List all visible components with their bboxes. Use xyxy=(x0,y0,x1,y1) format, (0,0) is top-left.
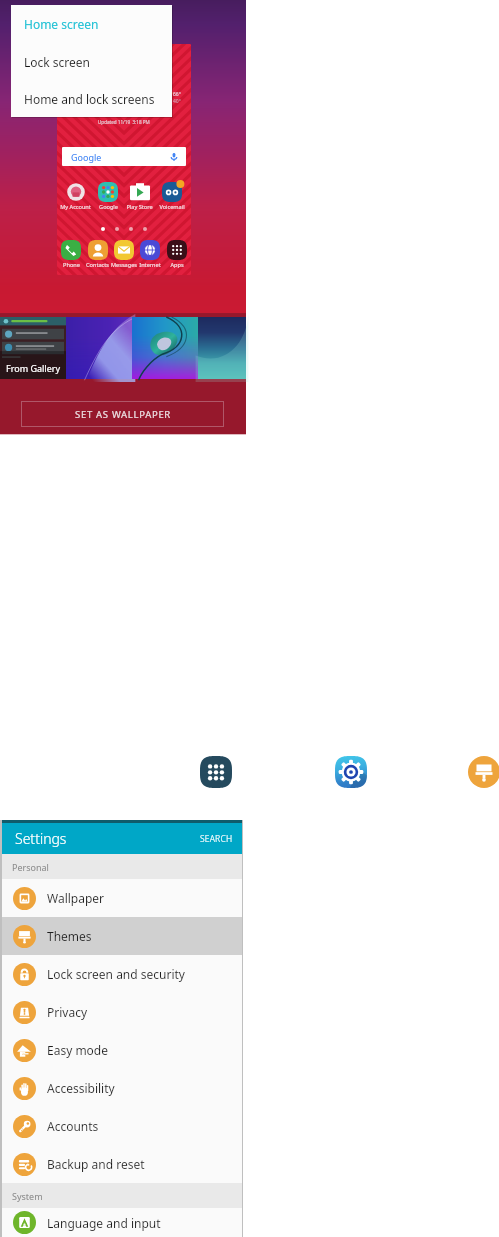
button[interactable] xyxy=(66,182,86,202)
staticText: Language and input xyxy=(47,1215,161,1231)
button[interactable]: Lock screen and security xyxy=(2,955,242,993)
button[interactable] xyxy=(162,182,182,202)
staticText: Google xyxy=(99,203,118,211)
button[interactable] xyxy=(198,317,246,379)
staticText: SET AS WALLPAPER xyxy=(75,408,171,421)
button[interactable] xyxy=(88,240,108,260)
staticText: Lock screen and security xyxy=(47,966,185,982)
button[interactable]: Accounts xyxy=(2,1107,242,1145)
staticText: Phone xyxy=(63,261,80,269)
button[interactable]: SEARCH xyxy=(191,825,242,853)
staticText: Backup and reset xyxy=(47,1156,145,1172)
button[interactable] xyxy=(167,240,187,260)
staticText: 40° xyxy=(173,98,181,105)
button[interactable] xyxy=(114,240,134,260)
button[interactable] xyxy=(66,317,132,379)
button[interactable]: Easy mode xyxy=(2,1031,242,1069)
staticText: Accessibility xyxy=(47,1080,115,1096)
button[interactable]: Language and input xyxy=(2,1208,242,1237)
staticText: Easy mode xyxy=(47,1042,109,1058)
button[interactable]: Home screen xyxy=(11,5,172,43)
button[interactable] xyxy=(130,182,150,202)
button[interactable] xyxy=(140,240,160,260)
staticText: Personal xyxy=(12,861,49,873)
staticText: My Account xyxy=(60,203,91,211)
button[interactable]: Accessibility xyxy=(2,1069,242,1107)
staticText: Messages xyxy=(111,261,137,269)
staticText: Themes xyxy=(47,928,92,944)
button[interactable]: Home and lock screens xyxy=(11,80,172,117)
staticText: Contacts xyxy=(86,261,109,269)
button[interactable]: Privacy xyxy=(2,993,242,1031)
button[interactable]: From Gallery xyxy=(0,317,66,379)
staticText: Accounts xyxy=(47,1118,99,1134)
button[interactable]: SET AS WALLPAPER xyxy=(21,401,224,427)
button[interactable]: Themes xyxy=(2,917,242,955)
button[interactable]: Settings xyxy=(335,756,367,788)
button[interactable]: Backup and reset xyxy=(2,1145,242,1183)
staticText: Updated 11/19 3:18 PM xyxy=(98,119,150,125)
staticText: Lock screen xyxy=(24,54,91,70)
button[interactable] xyxy=(98,182,118,202)
staticText: SEARCH xyxy=(200,833,233,845)
button[interactable]: Wallpaper xyxy=(2,879,242,917)
button[interactable]: Apps xyxy=(200,756,232,788)
staticText: Voicemail xyxy=(159,203,185,211)
staticText: Home and lock screens xyxy=(24,91,155,107)
button[interactable]: Themes xyxy=(468,756,499,788)
staticText: Apps xyxy=(170,261,184,269)
button[interactable]: Lock screen xyxy=(11,43,172,80)
staticText: 66° xyxy=(173,91,181,98)
staticText: System xyxy=(12,1190,43,1202)
staticText: Wallpaper xyxy=(47,890,105,906)
button[interactable]: Google xyxy=(62,147,186,166)
staticText: Settings xyxy=(15,829,67,848)
staticText: Google xyxy=(71,151,102,163)
button[interactable] xyxy=(61,240,81,260)
staticText: Home screen xyxy=(24,16,99,32)
staticText: Internet xyxy=(139,261,161,269)
staticText: Dallas 44° xyxy=(103,105,153,119)
staticText: From Gallery xyxy=(6,362,61,374)
button[interactable] xyxy=(132,317,198,379)
staticText: Privacy xyxy=(47,1004,88,1020)
staticText: Play Store xyxy=(126,203,153,211)
